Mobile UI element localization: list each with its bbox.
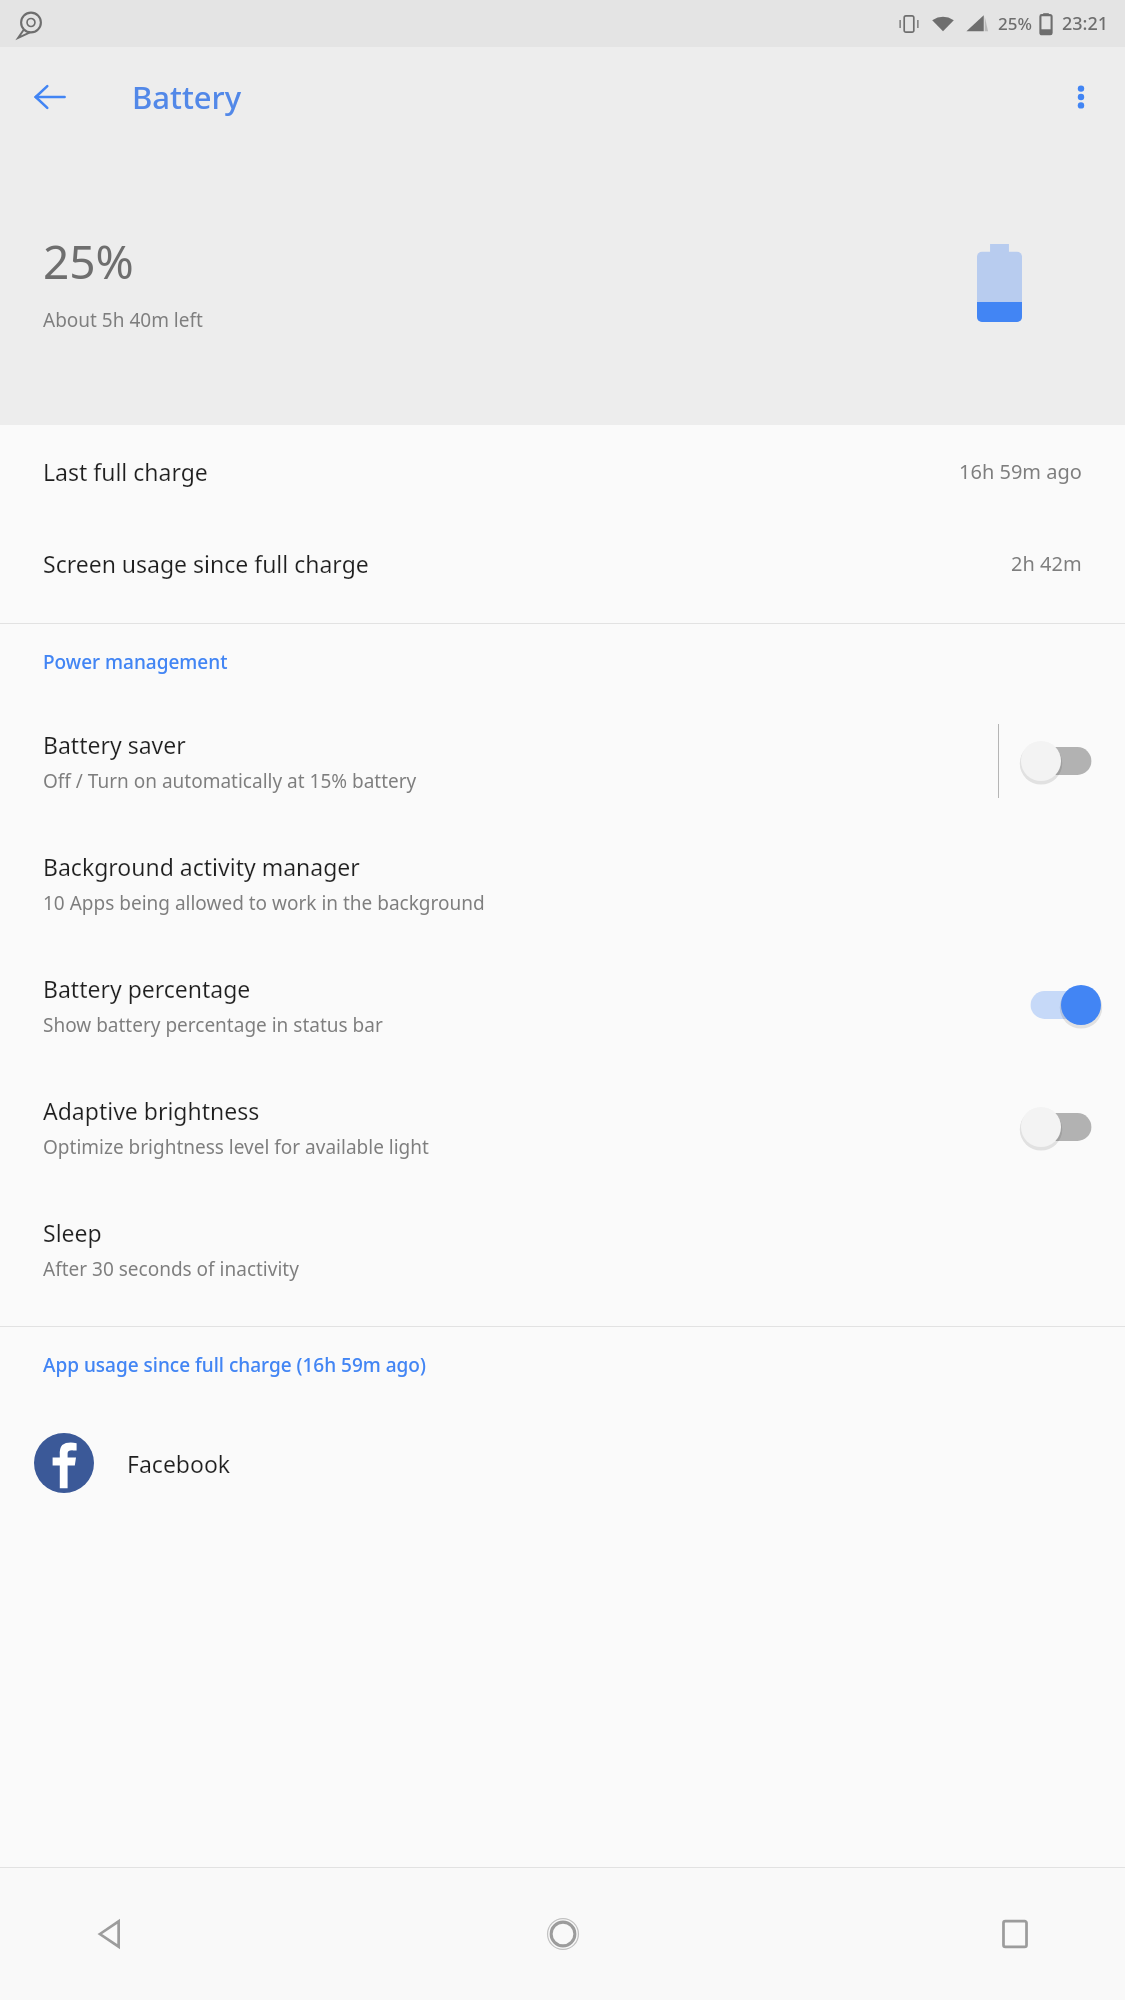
staticText: Show battery percentage in status bar [43,1012,383,1038]
button[interactable]: Back [60,1884,160,1984]
staticText: Optimize brightness level for available … [43,1134,429,1160]
staticText: Screen usage since full charge [43,548,1011,579]
staticText: Battery percentage [43,973,251,1004]
staticText: Power management [43,649,228,675]
staticText: About 5h 40m left [43,307,203,333]
staticText: 23:21 [1062,11,1109,36]
button[interactable]: Recents [965,1884,1065,1984]
button[interactable]: Facebook [0,1403,1125,1523]
staticText: Last full charge [43,456,959,487]
button[interactable]: Battery saver [0,700,1125,822]
button[interactable]: More options [1051,67,1111,127]
button[interactable]: Back [20,67,80,127]
button[interactable]: Battery percentage [1021,976,1101,1034]
staticText: After 30 seconds of inactivity [43,1256,299,1282]
staticText: App usage since full charge (16h 59m ago… [43,1352,426,1378]
staticText: 2h 42m [1011,550,1082,577]
staticText: 16h 59m ago [959,458,1082,485]
button[interactable]: Last full charge [0,425,1125,517]
button[interactable]: Background activity manager [0,822,1125,944]
staticText: 25% [998,12,1032,35]
button[interactable]: Screen usage since full charge [0,517,1125,609]
button[interactable]: Adaptive brightness [1021,1098,1101,1156]
button[interactable]: Home [513,1884,613,1984]
staticText: 25% [43,230,134,293]
staticText: Sleep [43,1217,102,1248]
button[interactable]: Sleep [0,1188,1125,1310]
button[interactable]: Battery percentage [0,944,1125,1066]
staticText: 10 Apps being allowed to work in the bac… [43,890,485,916]
staticText: Background activity manager [43,851,360,882]
staticText: Battery [132,76,242,118]
staticText: Battery saver [43,729,186,760]
staticText: Adaptive brightness [43,1095,260,1126]
staticText: Facebook [127,1448,231,1479]
button[interactable]: Battery saver [1021,732,1101,790]
button[interactable]: Adaptive brightness [0,1066,1125,1188]
staticText: Off / Turn on automatically at 15% batte… [43,768,417,794]
